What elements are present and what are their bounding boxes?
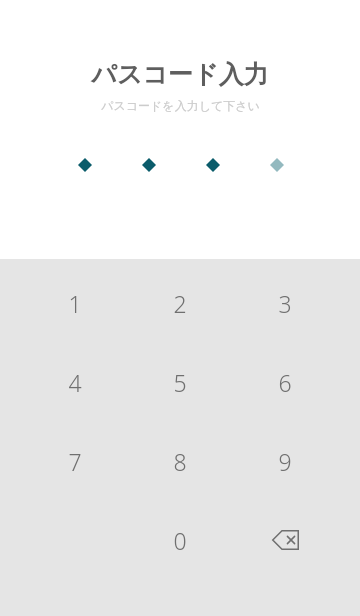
- staticText: 7: [68, 446, 82, 477]
- staticText: 4: [68, 367, 82, 398]
- button[interactable]: 7: [27, 432, 123, 490]
- staticText: 9: [278, 446, 292, 477]
- staticText: 3: [278, 288, 292, 319]
- staticText: 0: [173, 525, 187, 556]
- staticText: 6: [278, 367, 292, 398]
- button[interactable]: 2: [132, 274, 228, 332]
- button[interactable]: 3: [237, 274, 333, 332]
- button[interactable]: 9: [237, 432, 333, 490]
- button[interactable]: 4: [27, 353, 123, 411]
- button[interactable]: 6: [237, 353, 333, 411]
- button[interactable]: 1: [27, 274, 123, 332]
- staticText: パスコード入力: [91, 59, 269, 90]
- button[interactable]: 5: [132, 353, 228, 411]
- button[interactable]: 8: [132, 432, 228, 490]
- staticText: 5: [173, 367, 187, 398]
- staticText: 1: [68, 288, 82, 319]
- button[interactable]: Backspace: [237, 511, 333, 569]
- button[interactable]: 0: [132, 511, 228, 569]
- staticText: パスコードを入力して下さい: [101, 98, 260, 113]
- staticText: 2: [173, 288, 187, 319]
- staticText: 8: [173, 446, 187, 477]
